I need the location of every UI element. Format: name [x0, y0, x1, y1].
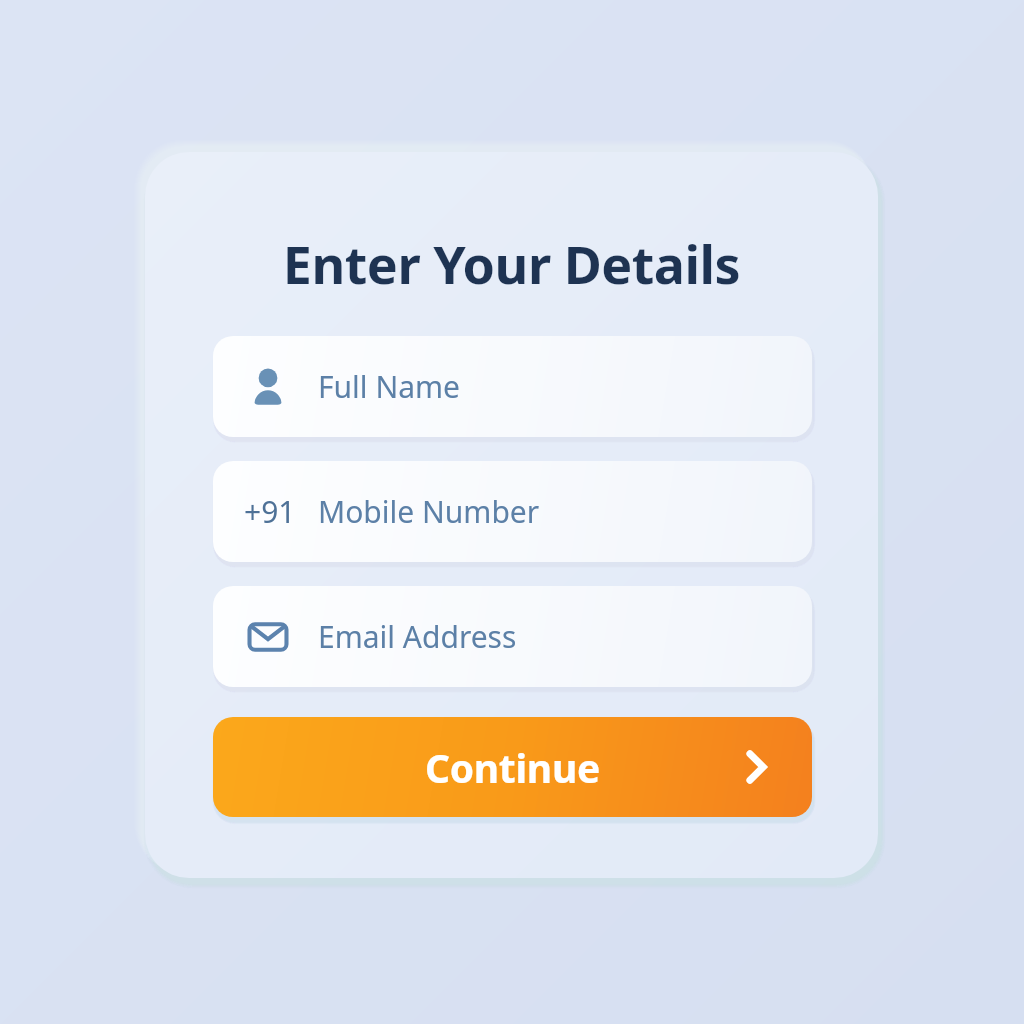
staticText: Continue	[425, 741, 600, 794]
staticText: Enter Your Details	[145, 228, 878, 299]
staticText: Mobile Number	[318, 491, 540, 532]
button[interactable]: Mobile Number input	[213, 461, 812, 562]
button[interactable]: Continue	[213, 717, 812, 817]
staticText: Full Name	[318, 366, 460, 407]
button[interactable]: Email Address input	[213, 586, 812, 687]
staticText: Email Address	[318, 616, 517, 657]
staticText: +91	[244, 491, 296, 532]
button[interactable]: Full Name input	[213, 336, 812, 437]
